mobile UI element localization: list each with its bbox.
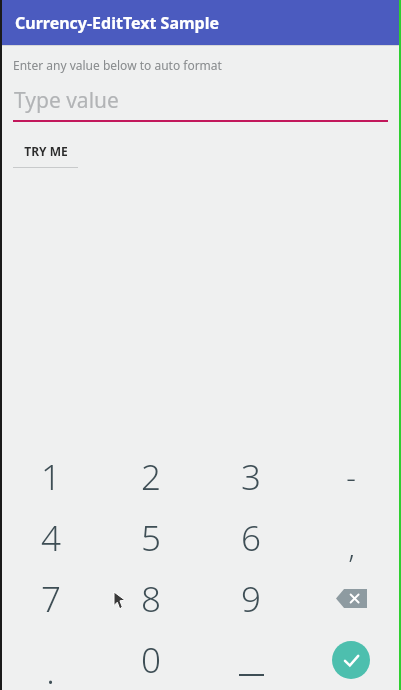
button[interactable]: Backspace (301, 568, 401, 629)
button[interactable]: Confirm (301, 629, 401, 690)
staticText: 2 (141, 453, 161, 501)
staticText: 1 (41, 453, 61, 501)
button[interactable]: 6 (201, 507, 301, 568)
button[interactable]: , (301, 507, 401, 568)
button[interactable]: - (301, 446, 401, 507)
staticText: 5 (141, 514, 161, 562)
button[interactable]: 4 (0, 507, 101, 568)
button[interactable]: Type value (0, 86, 401, 122)
staticText: Currency-EditText Sample (15, 12, 220, 34)
staticText: 3 (241, 453, 261, 501)
button[interactable]: 0 (101, 629, 201, 690)
button[interactable]: 2 (101, 446, 201, 507)
button[interactable]: 7 (0, 568, 101, 629)
staticText: . (46, 647, 55, 690)
button[interactable]: 1 (0, 446, 101, 507)
staticText: 9 (241, 575, 261, 623)
staticText: 0 (141, 636, 161, 684)
button[interactable]: Space (201, 629, 301, 690)
staticText: Enter any value below to auto format (13, 57, 222, 73)
button[interactable]: 8 (101, 568, 201, 629)
staticText: Type value (14, 86, 119, 115)
button[interactable]: . (0, 629, 101, 690)
button[interactable]: TRY ME (13, 143, 78, 168)
button[interactable]: 3 (201, 446, 301, 507)
button[interactable]: 5 (101, 507, 201, 568)
staticText: 8 (141, 575, 161, 623)
staticText: 7 (41, 575, 61, 623)
staticText: 4 (41, 514, 61, 562)
staticText: , (348, 526, 355, 567)
staticText: - (346, 456, 356, 497)
staticText: 6 (241, 514, 261, 562)
button[interactable]: 9 (201, 568, 301, 629)
staticText: TRY ME (24, 143, 68, 159)
